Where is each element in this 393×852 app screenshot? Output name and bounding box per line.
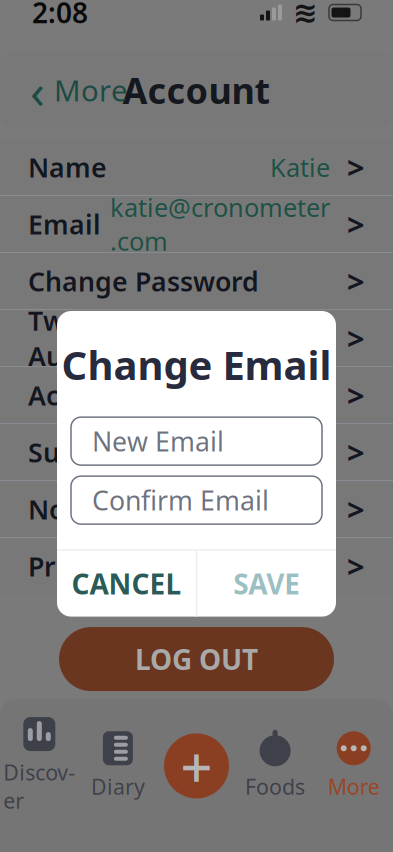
staticText: New Email xyxy=(92,423,224,459)
staticText: SAVE xyxy=(233,565,300,602)
button[interactable]: SAVE xyxy=(197,551,336,617)
button[interactable]: Foods xyxy=(236,731,314,801)
button[interactable]: Privacy xyxy=(0,538,393,594)
staticText: Change Email xyxy=(61,338,331,391)
staticText: Diary xyxy=(91,772,145,801)
staticText: Notifications xyxy=(28,491,195,527)
button[interactable]: Name xyxy=(0,139,393,195)
staticText: Subscription xyxy=(28,434,192,470)
button[interactable]: Account Type xyxy=(0,367,393,423)
staticText: Two-Factor Authentication xyxy=(28,303,224,373)
staticText: More xyxy=(54,71,128,110)
staticText: More xyxy=(328,772,380,801)
button[interactable]: Email xyxy=(0,196,393,252)
button[interactable]: Subscription xyxy=(0,424,393,480)
staticText: > xyxy=(347,204,365,244)
staticText: katie@cronometer.com xyxy=(110,190,330,258)
button[interactable]: LOG OUT xyxy=(59,627,334,691)
button[interactable]: More xyxy=(314,731,393,801)
staticText: > xyxy=(347,546,365,586)
staticText: Privacy xyxy=(28,548,123,584)
staticText: CANCEL xyxy=(71,565,181,602)
button[interactable]: Two-Factor Authentication xyxy=(0,310,393,366)
button[interactable]: Change Password xyxy=(0,253,393,309)
staticText: > xyxy=(347,147,365,187)
staticText: > xyxy=(347,432,365,472)
staticText: > xyxy=(347,489,365,529)
button[interactable]: Discover xyxy=(0,717,79,815)
button[interactable]: Add entry xyxy=(157,729,236,803)
staticText: > xyxy=(347,375,365,415)
button[interactable]: Notifications xyxy=(0,481,393,537)
staticText: > xyxy=(347,261,365,301)
staticText: ≋ xyxy=(293,0,318,29)
staticText: > xyxy=(347,318,365,358)
staticText: Account Type xyxy=(28,377,203,413)
staticText: Confirm Email xyxy=(92,482,269,518)
staticText: Change Password xyxy=(28,263,259,299)
staticText: Katie xyxy=(270,150,330,184)
button[interactable]: CANCEL xyxy=(57,551,196,617)
staticText: Foods xyxy=(245,772,305,801)
staticText: Account xyxy=(122,66,270,114)
button[interactable]: Diary xyxy=(79,731,157,801)
staticText: ‹ xyxy=(30,58,45,122)
staticText: LOG OUT xyxy=(135,640,258,678)
staticText: + xyxy=(180,729,212,803)
staticText: Email xyxy=(28,206,101,242)
staticText: Name xyxy=(28,149,107,185)
staticText: 2:08 xyxy=(32,0,88,31)
button[interactable]: ‹ xyxy=(18,50,140,130)
staticText: Discover xyxy=(3,758,75,815)
